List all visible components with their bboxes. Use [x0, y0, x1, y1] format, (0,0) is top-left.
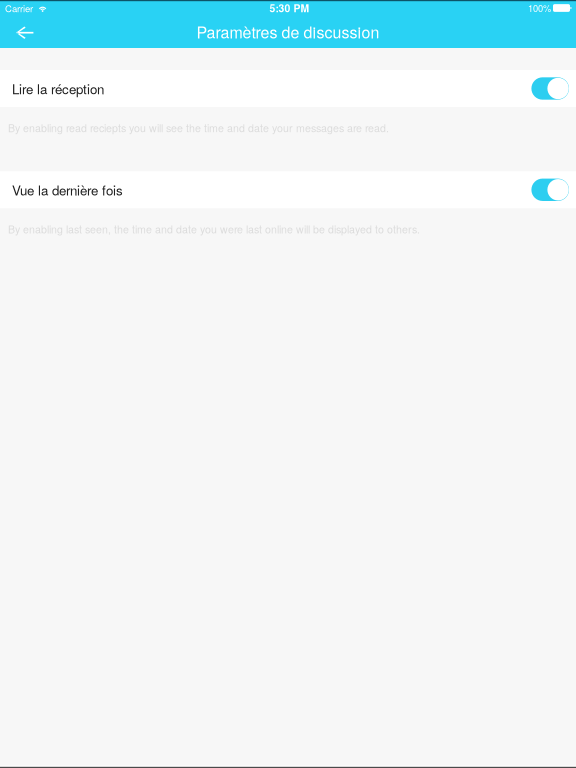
button[interactable]: Vue la dernière fois: [0, 171, 576, 208]
staticText: By enabling read reciepts you will see t…: [8, 120, 389, 135]
button[interactable]: Lire la réception: [0, 70, 576, 107]
staticText: Vue la dernière fois: [12, 180, 123, 199]
staticText: 100%: [528, 1, 551, 15]
staticText: Carrier: [5, 1, 33, 15]
staticText: Paramètres de discussion: [196, 20, 379, 43]
staticText: 5:30 PM: [269, 1, 309, 15]
button[interactable]: Back: [0, 18, 48, 48]
staticText: Lire la réception: [12, 79, 104, 98]
staticText: By enabling last seen, the time and date…: [8, 221, 420, 237]
